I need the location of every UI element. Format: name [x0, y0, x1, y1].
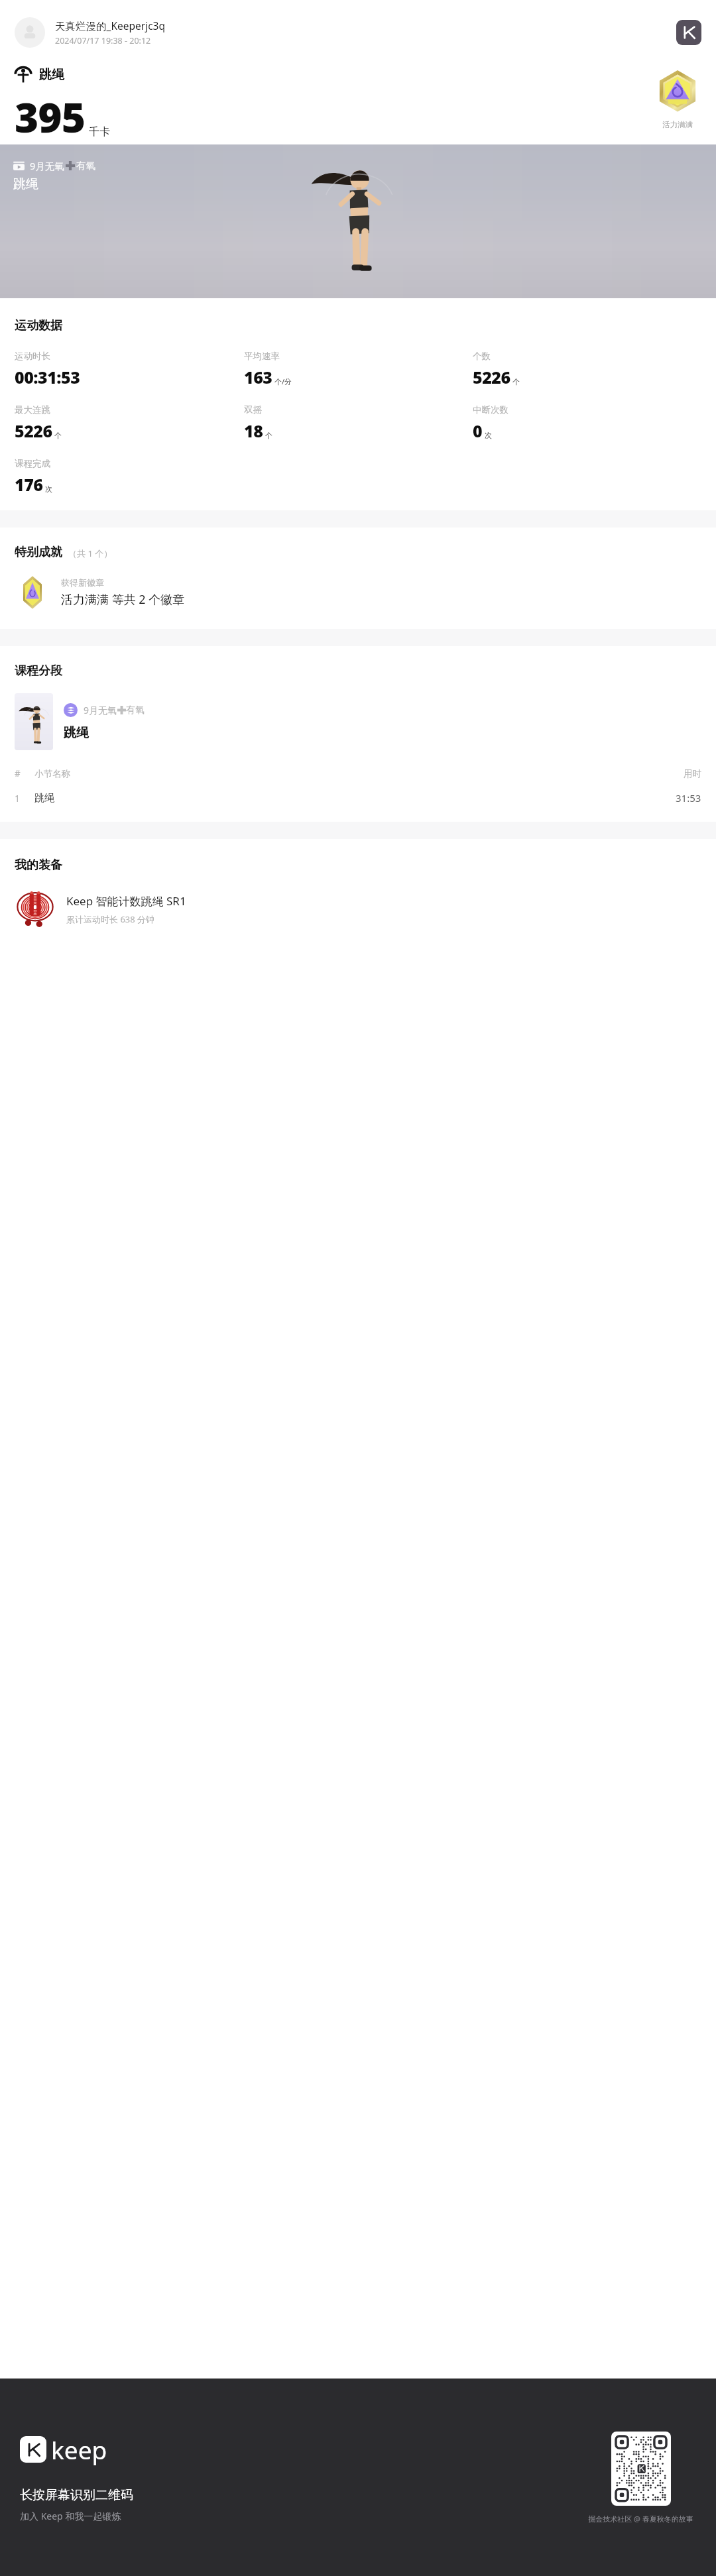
button[interactable]: Keep: [676, 20, 701, 45]
staticText: 5226: [473, 366, 510, 388]
staticText: 中断次数: [473, 404, 508, 416]
staticText: 00:31:53: [15, 366, 80, 388]
staticText: 个数: [473, 351, 491, 362]
staticText: 长按屏幕识别二维码: [20, 2487, 133, 2503]
staticText: Keep 智能计数跳绳 SR1: [66, 893, 186, 909]
staticText: 9月无氧: [30, 159, 64, 172]
staticText: 跳绳: [39, 67, 64, 83]
staticText: 跳绳: [34, 792, 676, 805]
staticText: 有氧: [126, 704, 145, 716]
staticText: 个/分: [274, 376, 292, 386]
staticText: 最大连跳: [15, 404, 50, 416]
staticText: 千卡: [89, 125, 110, 139]
staticText: 18: [244, 420, 263, 442]
staticText: 特别成就: [15, 545, 62, 560]
staticText: 0: [473, 420, 483, 442]
staticText: 我的装备: [15, 858, 62, 873]
staticText: 掘金技术社区 @ 春夏秋冬的故事: [588, 2514, 693, 2524]
staticText: 获得新徽章: [61, 577, 104, 588]
staticText: 9月无氧: [84, 704, 117, 716]
staticText: 活力满满: [662, 120, 693, 129]
staticText: 活力满满 等共 2 个徽章: [61, 591, 185, 608]
staticText: 次: [45, 484, 52, 494]
staticText: 用时: [684, 768, 701, 779]
button[interactable]: Keep 智能计数跳绳 SR1: [15, 889, 701, 930]
staticText: 运动数据: [15, 318, 62, 333]
staticText: 次: [485, 431, 492, 440]
staticText: 31:53: [676, 791, 701, 805]
staticText: 个: [265, 431, 272, 440]
staticText: 加入 Keep 和我一起锻炼: [20, 2510, 121, 2522]
staticText: 163: [244, 366, 272, 388]
button[interactable]: 1: [15, 791, 701, 805]
staticText: 跳绳: [13, 176, 38, 192]
button[interactable]: 获得新徽章: [15, 575, 701, 610]
staticText: 天真烂漫的_Keeperjc3q: [55, 19, 165, 32]
staticText: （共 1 个）: [68, 547, 113, 559]
staticText: #: [15, 767, 34, 779]
button[interactable]: QR code: [611, 2432, 671, 2506]
staticText: 5226: [15, 420, 52, 442]
staticText: 双摇: [244, 404, 262, 416]
staticText: 1: [15, 792, 34, 805]
staticText: 小节名称: [34, 768, 684, 779]
staticText: 跳绳: [64, 725, 89, 741]
staticText: 运动时长: [15, 351, 50, 362]
staticText: keep: [51, 2433, 107, 2466]
button[interactable]: 活力满满: [655, 70, 700, 129]
staticText: 课程分段: [15, 663, 62, 679]
button[interactable]: [15, 17, 45, 48]
staticText: 个: [512, 377, 520, 386]
staticText: 课程完成: [15, 458, 50, 469]
staticText: 2024/07/17 19:38 - 20:12: [55, 35, 151, 46]
button[interactable]: 9月无氧: [0, 144, 716, 298]
staticText: 累计运动时长 638 分钟: [66, 913, 155, 925]
button[interactable]: 9月无氧: [15, 693, 701, 750]
staticText: 有氧: [76, 160, 95, 172]
staticText: 395: [15, 89, 85, 144]
staticText: 个: [54, 431, 62, 440]
staticText: 176: [15, 473, 43, 496]
staticText: 平均速率: [244, 351, 280, 362]
